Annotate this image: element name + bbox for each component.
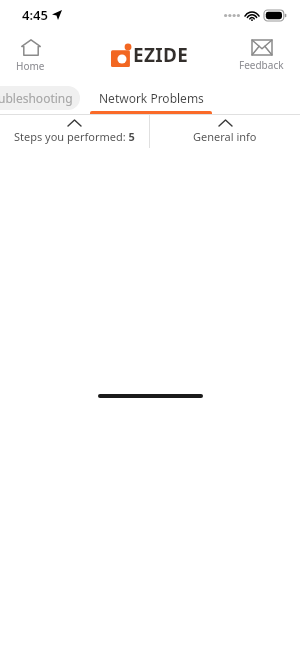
button[interactable]: Steps you performed: 5 [0,115,149,148]
staticText: General info [193,129,257,144]
button[interactable]: Feedback [231,36,292,76]
button[interactable]: General info [150,115,300,148]
staticText: Troubleshooting [0,90,73,106]
staticText: EZIDE [133,42,189,68]
button[interactable]: Home [8,35,53,77]
staticText: Network Problems [99,90,204,106]
button[interactable]: Network Problems [90,82,212,114]
staticText: 4:45 [22,6,48,24]
staticText: Steps you performed: 5 [14,129,135,144]
button[interactable]: Troubleshooting [0,86,80,110]
staticText: Feedback [239,58,284,72]
staticText: Home [16,59,45,73]
